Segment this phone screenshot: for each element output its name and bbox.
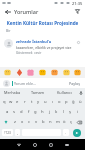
button[interactable]: t (28, 98, 35, 106)
button[interactable]: Emoji (26, 68, 35, 77)
staticText: r (24, 99, 26, 105)
staticText: l (63, 109, 65, 115)
staticText: , (17, 130, 19, 135)
button[interactable]: z (11, 118, 19, 126)
staticText: kazanırken, elbirlik ve projeyet vize (16, 45, 72, 50)
button[interactable]: Shift (1, 118, 11, 126)
staticText: e (16, 99, 19, 105)
button[interactable]: Back (11, 139, 27, 150)
button[interactable]: Kentin Kültür Rotası Projesinde (0, 17, 85, 36)
staticText: m (56, 119, 60, 125)
staticText: j (49, 109, 51, 115)
button[interactable]: g (32, 108, 39, 116)
staticText: c (28, 119, 31, 125)
staticText: d (20, 109, 23, 115)
button[interactable]: h (39, 108, 46, 116)
button[interactable]: Hide keyboard (59, 139, 75, 150)
button[interactable]: , (15, 129, 20, 136)
staticText: y (37, 99, 40, 105)
staticText: w (9, 99, 13, 105)
button[interactable]: o (56, 98, 63, 106)
button[interactable]: ş (67, 108, 74, 116)
staticText: Göstermek cevir (16, 51, 42, 55)
button[interactable]: u (42, 98, 49, 106)
staticText: Yorum ekle... (14, 81, 36, 86)
staticText: z (14, 119, 16, 125)
staticText: ?123 (4, 131, 11, 135)
button[interactable]: Recent apps (43, 139, 59, 150)
button[interactable]: Emoji (15, 68, 24, 77)
button[interactable]: m (54, 118, 61, 126)
button[interactable]: p (63, 98, 70, 106)
button[interactable]: Yorum ekle... (12, 81, 67, 86)
button[interactable]: ü (77, 98, 84, 106)
button[interactable]: Home (27, 139, 43, 150)
button[interactable]: ?123 (2, 129, 13, 136)
staticText: s (13, 109, 16, 115)
button[interactable]: Back (3, 7, 12, 16)
button[interactable]: q (1, 98, 7, 106)
button[interactable]: ğ (70, 98, 77, 106)
button[interactable]: . (63, 129, 69, 136)
button[interactable]: Tamam (25, 88, 51, 97)
button[interactable]: zehrade İstanbul'u (0, 36, 85, 58)
button[interactable]: f (25, 108, 32, 116)
button[interactable]: Emoji (62, 68, 71, 77)
button[interactable]: Backspace (75, 118, 84, 126)
staticText: a (6, 109, 9, 115)
staticText: ü (79, 99, 82, 105)
staticText: Yorumlar (14, 8, 39, 15)
button[interactable]: l (60, 108, 67, 116)
button[interactable]: Voice input (77, 88, 85, 97)
staticText: . (65, 130, 67, 135)
button[interactable]: Emoji (3, 68, 12, 77)
staticText: x (21, 119, 24, 125)
staticText: k (55, 109, 58, 115)
button[interactable]: n (47, 118, 54, 126)
button[interactable]: d (18, 108, 25, 116)
button[interactable]: Merhaba (0, 88, 25, 97)
button[interactable]: Emoji (38, 68, 47, 77)
button[interactable]: Send (73, 129, 81, 137)
staticText: v (35, 119, 38, 125)
button[interactable]: More options (75, 39, 81, 45)
button[interactable]: Emoji (73, 68, 82, 77)
button[interactable]: Kullanıcı (51, 88, 77, 97)
button[interactable]: y (35, 98, 42, 106)
staticText: t (31, 99, 33, 105)
button[interactable]: r (21, 98, 28, 106)
button[interactable]: c (26, 118, 33, 126)
staticText: o (58, 99, 61, 105)
button[interactable]: s (11, 108, 18, 116)
button[interactable]: a (4, 108, 11, 116)
button[interactable]: ç (68, 118, 75, 126)
button[interactable]: j (46, 108, 53, 116)
staticText: p (65, 99, 68, 105)
staticText: Merhaba (4, 90, 21, 95)
button[interactable]: Paylaş (67, 80, 82, 87)
staticText: n (49, 119, 52, 125)
button[interactable]: Emoji (50, 68, 59, 77)
button[interactable]: i (74, 108, 81, 116)
staticText: g (34, 109, 37, 115)
button[interactable]: Filter (73, 7, 82, 16)
button[interactable]: ı (49, 98, 56, 106)
staticText: u (44, 99, 47, 105)
staticText: 21:35 (72, 1, 83, 6)
staticText: f (28, 109, 30, 115)
staticText: zehrade İstanbul'u (16, 39, 52, 44)
staticText: h (41, 109, 44, 115)
staticText: Kullanıcı (57, 90, 72, 95)
button[interactable]: w (7, 98, 14, 106)
button[interactable]: v (33, 118, 40, 126)
button[interactable]: e (14, 98, 21, 106)
staticText: ğ (72, 99, 75, 105)
staticText: Kentin Kültür Rotası Projesinde (6, 20, 79, 26)
button[interactable]: x (19, 118, 26, 126)
button[interactable]: ö (61, 118, 68, 126)
button[interactable]: b (40, 118, 47, 126)
button[interactable]: k (53, 108, 60, 116)
staticText: ş (69, 109, 72, 115)
staticText: ı (52, 99, 54, 105)
